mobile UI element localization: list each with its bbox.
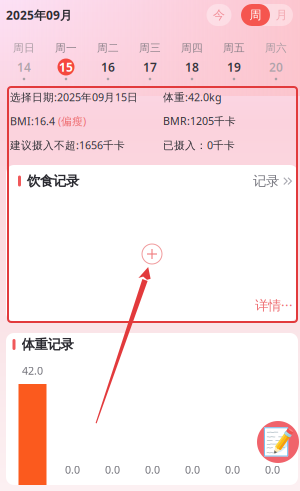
- staticText: 周六: [265, 41, 287, 54]
- staticText: 0.0: [145, 462, 160, 477]
- button[interactable]: 添加饮食记录: [140, 242, 164, 266]
- button[interactable]: 周五: [213, 38, 255, 86]
- staticText: 周一: [55, 41, 77, 54]
- staticText: BMR:1205千卡: [163, 114, 236, 128]
- staticText: 周二: [97, 41, 119, 54]
- staticText: 14: [17, 59, 31, 75]
- staticText: 周: [249, 8, 261, 22]
- button[interactable]: 周四: [171, 38, 213, 86]
- staticText: 20: [269, 59, 283, 75]
- staticText: 0.0: [225, 462, 240, 477]
- staticText: 15: [59, 59, 73, 75]
- staticText: 记录: [253, 173, 279, 189]
- staticText: 19: [227, 59, 241, 75]
- staticText: 今: [213, 8, 225, 22]
- staticText: 18: [185, 59, 199, 75]
- staticText: 17: [143, 59, 157, 75]
- staticText: 周五: [223, 41, 245, 54]
- staticText: 📝: [261, 427, 294, 457]
- staticText: 详情···: [255, 296, 293, 314]
- button[interactable]: 周二: [87, 38, 129, 86]
- staticText: 选择日期:2025年09月15日: [10, 90, 138, 104]
- staticText: 建议摄入不超:1656千卡: [10, 138, 125, 152]
- staticText: 16: [101, 59, 115, 75]
- button[interactable]: 周: [241, 4, 293, 26]
- staticText: 饮食记录: [27, 173, 79, 189]
- staticText: 2025年09月: [6, 7, 72, 23]
- button[interactable]: 记录: [257, 421, 299, 463]
- button[interactable]: 周三: [129, 38, 171, 86]
- button[interactable]: 详情···: [255, 296, 293, 314]
- staticText: 0.0: [105, 462, 120, 477]
- staticText: (偏瘦): [58, 114, 86, 128]
- staticText: 0.0: [65, 462, 80, 477]
- button[interactable]: 周一: [45, 38, 87, 86]
- button[interactable]: 周日: [3, 38, 45, 86]
- staticText: BMI:16.4: [10, 114, 55, 128]
- staticText: 月: [275, 8, 287, 22]
- button[interactable]: 周六: [255, 38, 297, 86]
- staticText: 周四: [181, 41, 203, 54]
- staticText: 体重记录: [21, 336, 73, 353]
- button[interactable]: 今: [206, 4, 231, 26]
- button[interactable]: 记录: [253, 173, 292, 189]
- staticText: 周三: [139, 41, 161, 54]
- staticText: 42.0: [22, 363, 43, 378]
- staticText: 周日: [13, 41, 35, 54]
- staticText: 0.0: [265, 462, 280, 477]
- staticText: 已摄入：0千卡: [163, 138, 235, 152]
- staticText: 体重:42.0kg: [163, 90, 222, 104]
- staticText: 0.0: [185, 462, 200, 477]
